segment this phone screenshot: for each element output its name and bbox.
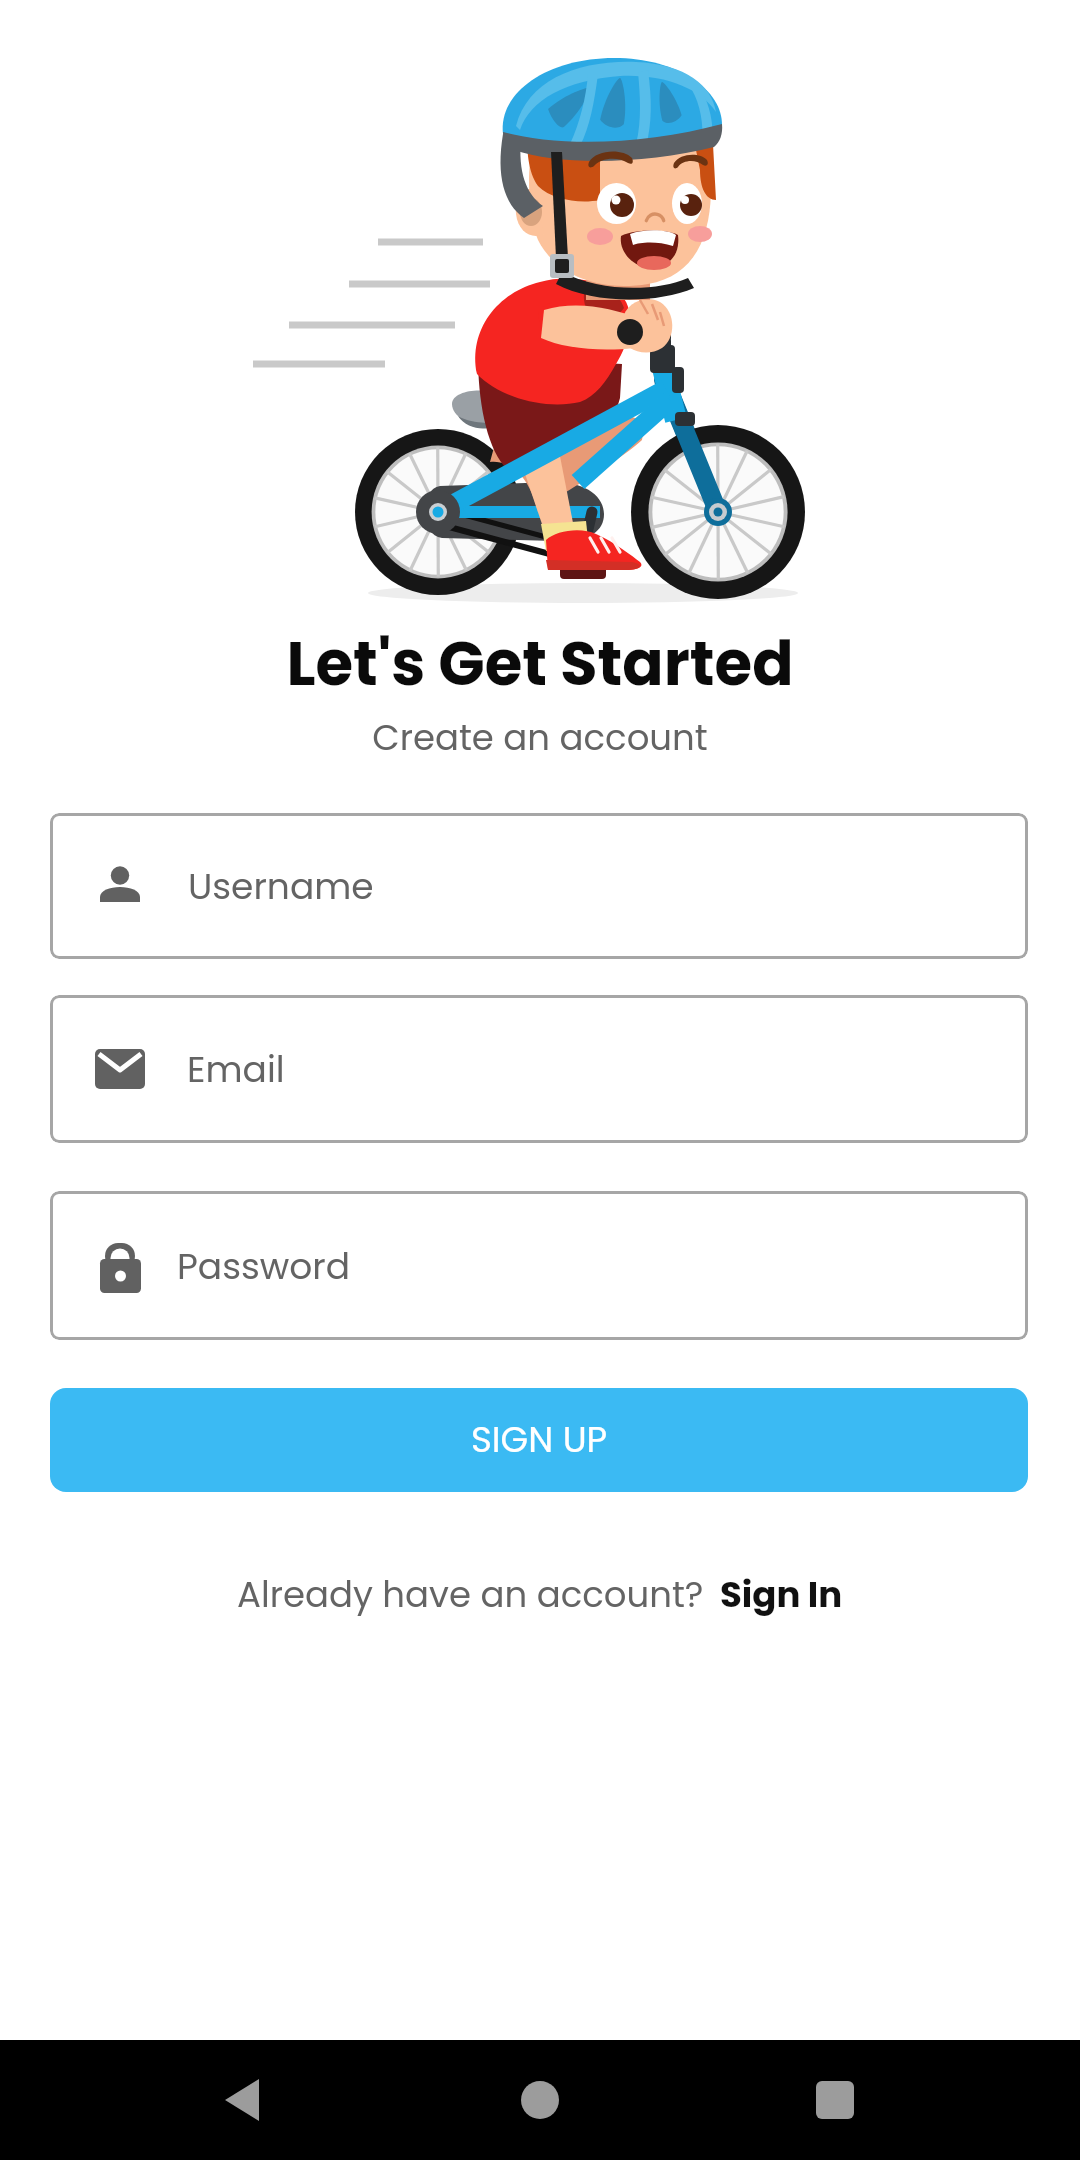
staticText: Already have an account? [237,1570,704,1620]
staticText: SIGN UP [471,1415,608,1465]
button[interactable]: Email [50,995,1028,1143]
button[interactable]: Password [50,1191,1028,1340]
button[interactable]: Sign In [720,1570,843,1620]
staticText: Password [177,1241,351,1291]
button[interactable]: Home [480,2040,600,2160]
staticText: Email [187,1044,285,1094]
staticText: Sign In [720,1570,843,1620]
button[interactable]: Recent apps [775,2040,895,2160]
staticText: Let's Get Started [286,621,794,706]
button[interactable]: SIGN UP [50,1388,1028,1492]
button[interactable]: Back [182,2040,302,2160]
button[interactable]: Username [50,813,1028,959]
staticText: Create an account [372,713,708,763]
staticText: Username [188,861,374,911]
